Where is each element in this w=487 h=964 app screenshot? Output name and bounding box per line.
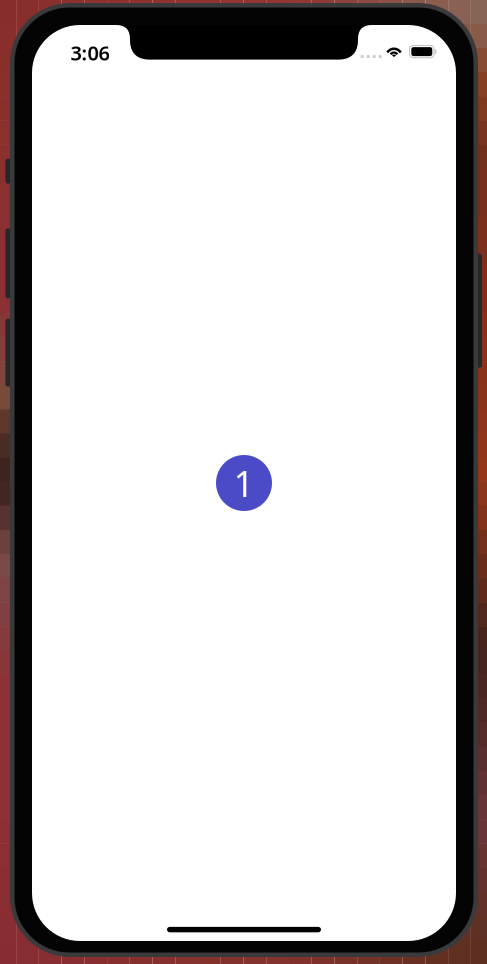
staticText: 1 xyxy=(233,459,254,507)
staticText: 3:06 xyxy=(70,39,109,66)
button[interactable]: 1 xyxy=(216,455,272,511)
